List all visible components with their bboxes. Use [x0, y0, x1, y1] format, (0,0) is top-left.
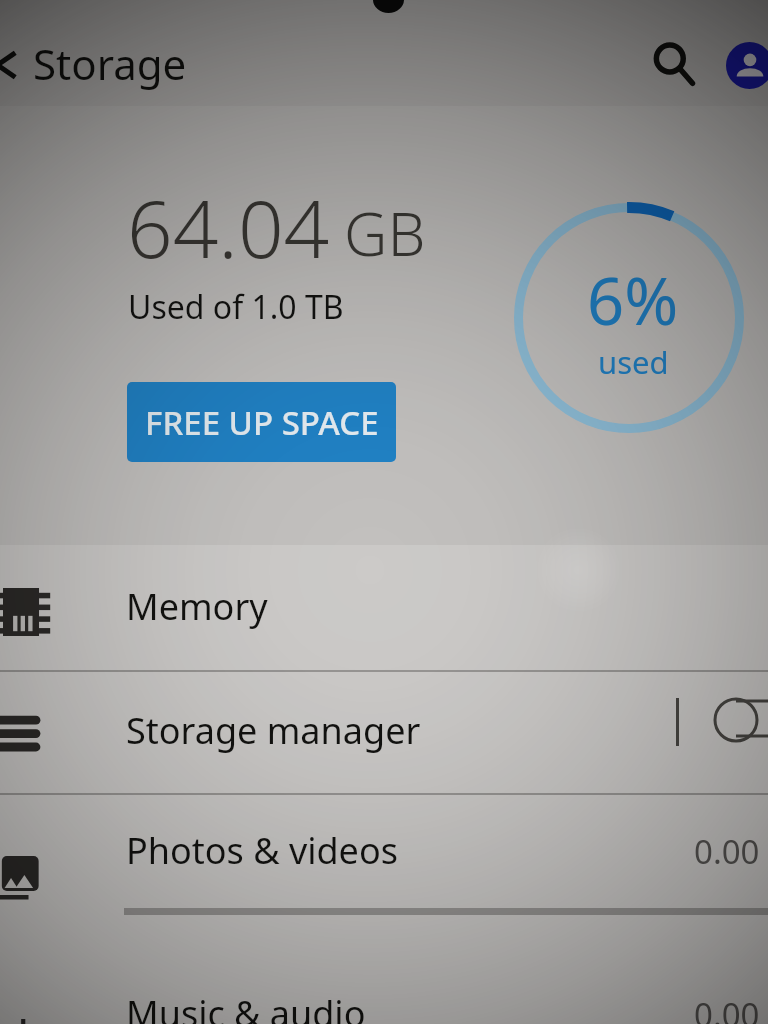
staticText: 0.00 G: [694, 829, 768, 874]
staticText: used: [598, 341, 669, 383]
button[interactable]: Memory: [0, 545, 768, 670]
staticText: 0.00 G: [694, 992, 768, 1024]
staticText: Used of 1.0 TB: [128, 285, 344, 329]
button[interactable]: 0.00 G: [0, 956, 768, 1024]
button[interactable]: FREE UP SPACE: [127, 382, 396, 462]
button[interactable]: Back: [0, 42, 28, 88]
button[interactable]: Storage manager: [0, 670, 768, 793]
staticText: 6%: [587, 256, 679, 345]
staticText: Memory: [126, 582, 268, 631]
staticText: GB: [344, 192, 426, 274]
button[interactable]: Account: [726, 42, 768, 89]
staticText: Photos & videos: [126, 826, 398, 875]
button[interactable]: Search: [643, 33, 705, 95]
staticText: 64.04: [127, 172, 330, 281]
staticText: Storage manager: [126, 706, 421, 755]
staticText: Storage: [33, 35, 187, 92]
staticText: Music & audio: [126, 989, 366, 1024]
button[interactable]: 0.00 G: [0, 793, 768, 956]
button[interactable]: Toggle storage manager: [712, 694, 768, 746]
staticText: FREE UP SPACE: [145, 400, 379, 445]
